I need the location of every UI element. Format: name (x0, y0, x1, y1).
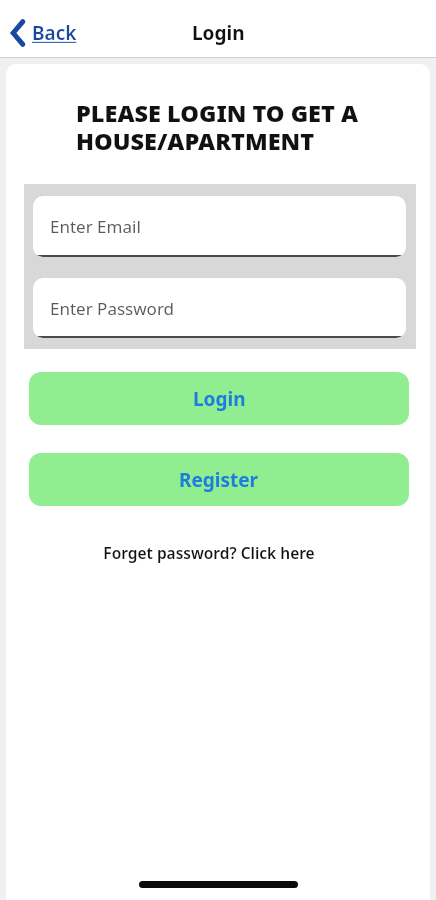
staticText: Enter Email (50, 215, 141, 238)
button[interactable]: Enter Email (33, 196, 406, 257)
button[interactable]: Enter Password (33, 278, 406, 338)
staticText: Login (193, 386, 246, 412)
staticText: PLEASE LOGIN TO GET A HOUSE/APARTMENT (76, 97, 359, 157)
staticText: Register (179, 467, 259, 493)
button[interactable]: Register (29, 453, 409, 506)
button[interactable]: Login (29, 372, 409, 425)
button[interactable]: Forget password? Click here (6, 542, 412, 563)
button[interactable]: Back (10, 20, 77, 46)
staticText: Enter Password (50, 297, 175, 320)
staticText: Login (192, 20, 245, 46)
staticText: Back (32, 20, 77, 46)
